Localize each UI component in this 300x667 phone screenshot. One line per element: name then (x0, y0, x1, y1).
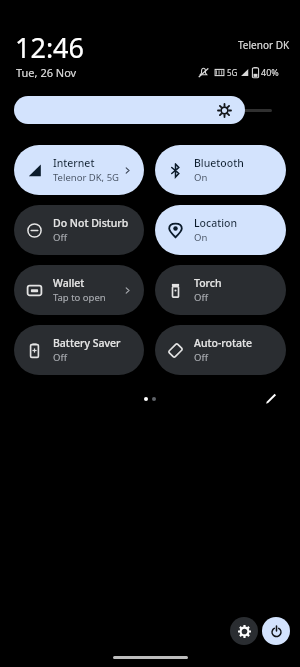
button[interactable]: Brightness (14, 96, 245, 124)
staticText: Do Not Disturb (53, 216, 129, 230)
staticText: 40% (261, 66, 279, 78)
staticText: Location (194, 216, 238, 230)
button[interactable]: Bluetooth (155, 145, 286, 195)
staticText: Torch (194, 276, 222, 290)
staticText: Telenor DK (238, 38, 290, 52)
button[interactable]: Location (155, 205, 286, 255)
staticText: Off (194, 351, 208, 364)
staticText: Tap to open (53, 291, 106, 304)
button[interactable]: Battery Saver (14, 325, 144, 375)
staticText: Battery Saver (53, 336, 121, 350)
staticText: Internet (53, 156, 95, 170)
staticText: Bluetooth (194, 156, 244, 170)
button[interactable]: Wallet (14, 265, 144, 315)
staticText: On (194, 171, 208, 184)
button[interactable]: Do Not Disturb (14, 205, 144, 255)
button[interactable]: Edit tiles (260, 388, 282, 410)
staticText: Telenor DK, 5G (53, 171, 119, 184)
button[interactable]: Settings (230, 617, 258, 645)
staticText: Wallet (53, 276, 85, 290)
staticText: Off (194, 291, 208, 304)
button[interactable]: Internet (14, 145, 144, 195)
staticText: 12:46 (15, 29, 85, 66)
staticText: Off (53, 231, 67, 244)
staticText: Tue, 26 Nov (16, 65, 77, 80)
staticText: Off (53, 351, 67, 364)
staticText: Auto-rotate (194, 336, 252, 350)
button[interactable]: Auto-rotate (155, 325, 286, 375)
staticText: On (194, 231, 208, 244)
button[interactable]: Torch (155, 265, 286, 315)
button[interactable]: Power (262, 617, 290, 645)
staticText: 5G (227, 67, 238, 78)
